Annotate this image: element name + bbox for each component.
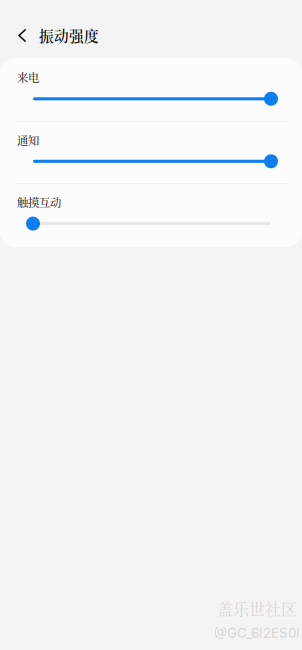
button[interactable]: 触摸互动 bbox=[0, 184, 302, 247]
staticText: 通知 bbox=[17, 132, 39, 148]
staticText: 振动强度 bbox=[39, 25, 99, 46]
staticText: 盖乐世社区 bbox=[217, 597, 297, 620]
staticText: @GC_6I2ES0I bbox=[214, 625, 300, 641]
staticText: 触摸互动 bbox=[17, 194, 61, 210]
button[interactable]: 通知 bbox=[0, 122, 302, 183]
button[interactable]: Back bbox=[0, 0, 302, 58]
button[interactable]: 来电 bbox=[0, 58, 302, 121]
staticText: 来电 bbox=[17, 69, 39, 85]
